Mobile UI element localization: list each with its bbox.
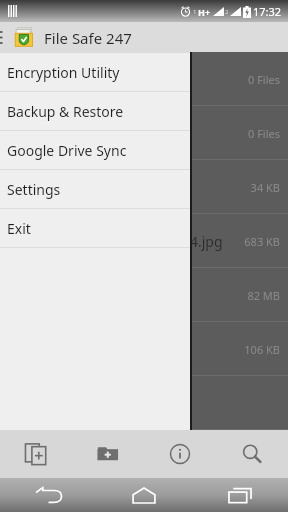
staticText: 683 KB	[244, 234, 280, 249]
button[interactable]: 0 Files	[0, 106, 288, 160]
staticText: 2	[225, 8, 229, 16]
button[interactable]: Search	[216, 430, 288, 478]
button[interactable]: Open navigation drawer	[0, 22, 14, 52]
button[interactable]: Settings	[0, 170, 190, 209]
button[interactable]: New folder	[72, 430, 144, 478]
staticText: Encryption Utility	[7, 63, 120, 82]
staticText: 0 Files	[247, 72, 280, 87]
button[interactable]: 34 KB	[0, 160, 288, 214]
staticText: 4.jpg	[190, 232, 223, 251]
button[interactable]: 106 KB	[0, 322, 288, 376]
staticText: 82 MB	[247, 288, 280, 303]
button[interactable]: Backup & Restore	[0, 92, 190, 131]
button[interactable]: 4.jpg	[0, 214, 288, 268]
staticText: Settings	[7, 180, 61, 199]
staticText: Google Drive Sync	[7, 141, 127, 160]
button[interactable]	[0, 376, 288, 430]
staticText: 17:32	[253, 4, 282, 19]
staticText: H+	[198, 6, 211, 18]
staticText: 34 KB	[250, 180, 280, 195]
staticText: Exit	[7, 219, 31, 238]
button[interactable]: Home	[96, 478, 192, 512]
button[interactable]: Exit	[0, 209, 190, 248]
staticText: 0 Files	[247, 126, 280, 141]
button[interactable]: 82 MB	[0, 268, 288, 322]
button[interactable]: Google Drive Sync	[0, 131, 190, 170]
staticText: 1	[193, 8, 197, 16]
button[interactable]: Info	[144, 430, 216, 478]
staticText: Backup & Restore	[7, 102, 124, 121]
button[interactable]: 0 Files	[0, 52, 288, 106]
button[interactable]: New file	[0, 430, 72, 478]
button[interactable]: Recent apps	[192, 478, 288, 512]
button[interactable]: Encryption Utility	[0, 53, 190, 92]
staticText: 106 KB	[244, 342, 280, 357]
button[interactable]: Back	[0, 478, 96, 512]
staticText: File Safe 247	[44, 28, 132, 48]
